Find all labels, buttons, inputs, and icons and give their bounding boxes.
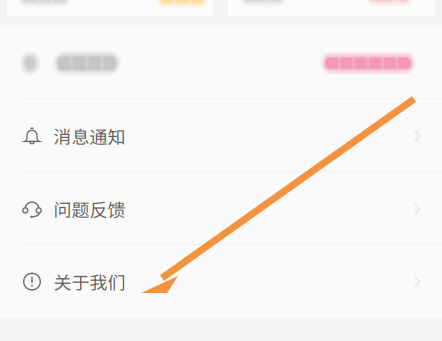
staticText: 问题反馈 [53,196,125,222]
staticText: 关于我们 [53,269,125,295]
button[interactable]: 消息通知 [0,100,442,172]
button[interactable]: 关于我们 [0,245,442,318]
button[interactable] [228,0,435,16]
button[interactable]: 问题反馈 [0,172,442,245]
staticText: 消息通知 [53,123,125,149]
button[interactable] [0,27,442,100]
button[interactable] [7,0,214,16]
